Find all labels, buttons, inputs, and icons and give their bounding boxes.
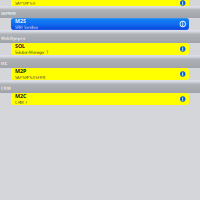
staticText: M2P — [15, 67, 26, 74]
staticText: M2C — [15, 92, 26, 99]
staticText: SAP ERP 6.0 — [15, 0, 35, 6]
button[interactable]: M2S — [0, 18, 200, 30]
staticText: Solution Manager 7 — [15, 49, 48, 55]
staticText: i — [182, 0, 184, 7]
staticText: i — [182, 45, 184, 53]
staticText: CRM 7 — [15, 99, 27, 105]
staticText: SOL — [15, 42, 25, 49]
staticText: i — [182, 95, 184, 103]
staticText: SAP ERP 6.0 EHP4 — [15, 74, 45, 80]
button[interactable]: M2C — [0, 93, 200, 105]
staticText: SRM Sandbox — [15, 24, 38, 30]
button[interactable]: SOL — [0, 43, 200, 55]
staticText: SAPWM — [1, 10, 16, 16]
staticText: M2S — [15, 17, 26, 24]
staticText: i — [182, 20, 184, 28]
staticText: CRM — [1, 85, 11, 91]
staticText: i — [182, 70, 184, 78]
staticText: ECC — [1, 60, 8, 66]
button[interactable]: M2P — [0, 68, 200, 80]
button[interactable]: SAP ERP 6.0 — [0, 0, 200, 6]
staticText: WebDynpro — [1, 35, 26, 41]
